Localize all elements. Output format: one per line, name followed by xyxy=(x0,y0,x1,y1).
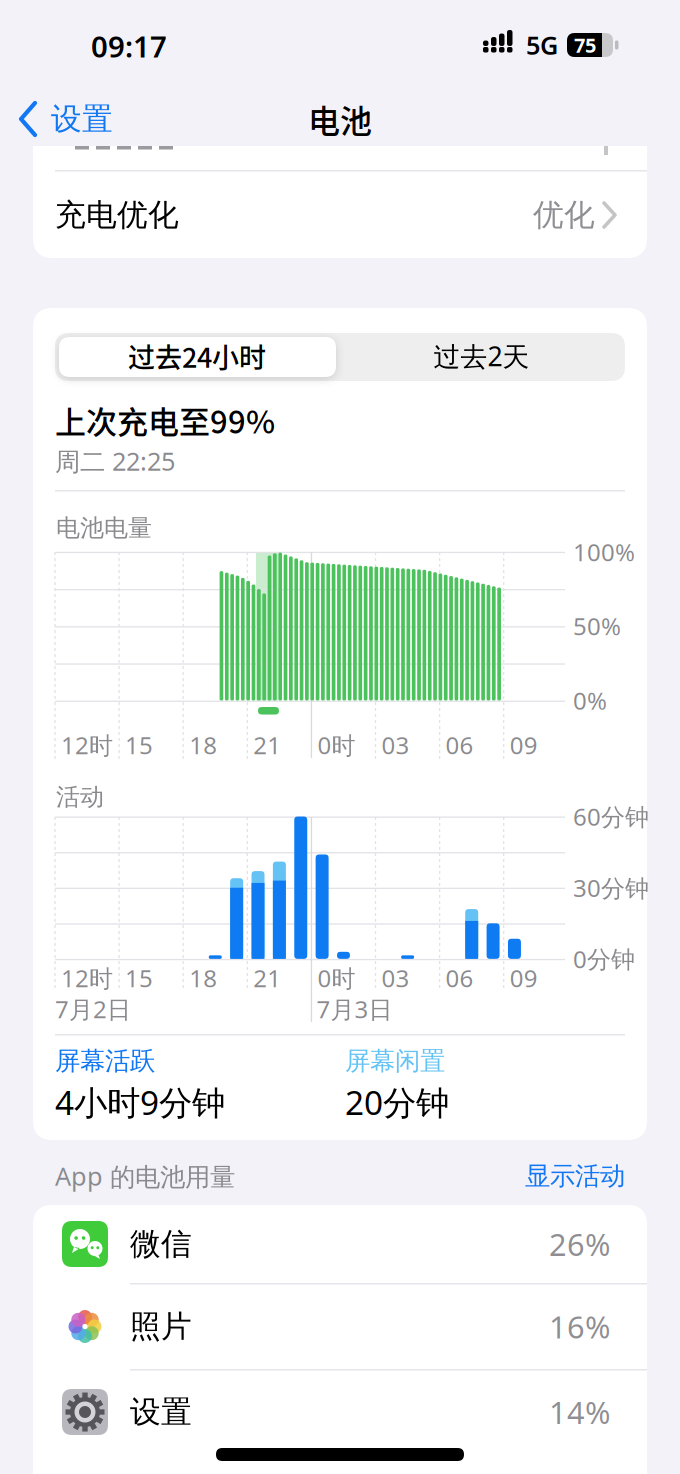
staticText: 03 xyxy=(381,962,409,994)
button[interactable]: 返回设置 xyxy=(0,89,150,149)
staticText: 充电优化 xyxy=(55,196,179,234)
staticText: 06 xyxy=(446,962,474,994)
staticText: 屏幕活跃 xyxy=(55,1045,155,1076)
staticText: 03 xyxy=(381,729,409,761)
button[interactable]: 充电优化 xyxy=(33,171,647,257)
staticText: 09 xyxy=(510,962,538,994)
staticText: 18 xyxy=(189,729,217,761)
staticText: App 的电池用量 xyxy=(55,1159,235,1193)
staticText: 18 xyxy=(189,962,217,994)
button[interactable]: 显示活动 xyxy=(205,1154,625,1198)
staticText: 周二 22:25 xyxy=(55,444,175,478)
staticText: 12时 xyxy=(61,962,113,994)
staticText: 15 xyxy=(125,729,153,761)
staticText: 微信 xyxy=(130,1225,192,1263)
staticText: 15 xyxy=(125,962,153,994)
staticText: 12时 xyxy=(61,729,113,761)
staticText: 7月3日 xyxy=(316,993,392,1025)
staticText: 电池电量 xyxy=(56,513,152,543)
staticText: 75 xyxy=(574,32,596,58)
staticText: 上次充电至99% xyxy=(55,398,275,442)
staticText: 21 xyxy=(253,729,281,761)
staticText: 50% xyxy=(573,610,621,642)
staticText: 过去24小时 xyxy=(128,336,266,376)
staticText: 0分钟 xyxy=(573,943,635,975)
staticText: 设置 xyxy=(51,100,113,138)
staticText: 30分钟 xyxy=(573,872,649,904)
staticText: 0时 xyxy=(317,962,355,994)
staticText: 26% xyxy=(549,1224,610,1264)
staticText: 0% xyxy=(573,685,607,716)
staticText: 照片 xyxy=(130,1308,192,1345)
button[interactable]: 过去2天 xyxy=(340,337,621,377)
staticText: 06 xyxy=(446,729,474,761)
staticText: 14% xyxy=(549,1392,610,1432)
staticText: 7月2日 xyxy=(55,993,131,1025)
staticText: 09:17 xyxy=(91,26,167,65)
staticText: 0时 xyxy=(317,729,355,761)
button[interactable]: 照片 xyxy=(33,1283,647,1369)
button[interactable]: 设置 xyxy=(33,1369,647,1455)
staticText: 优化 xyxy=(533,196,595,234)
staticText: 过去2天 xyxy=(433,338,529,374)
staticText: 16% xyxy=(549,1306,610,1347)
button[interactable]: 过去24小时 xyxy=(59,337,336,377)
staticText: 4小时9分钟 xyxy=(55,1080,225,1124)
staticText: 60分钟 xyxy=(573,801,649,832)
staticText: 显示活动 xyxy=(525,1160,625,1191)
staticText: 09 xyxy=(510,729,538,761)
staticText: 5G xyxy=(526,28,558,62)
staticText: 20分钟 xyxy=(345,1080,449,1124)
staticText: 100% xyxy=(573,536,635,568)
staticText: 21 xyxy=(253,962,281,994)
button[interactable]: 微信 xyxy=(33,1201,647,1287)
staticText: 活动 xyxy=(56,782,104,812)
staticText: 电池 xyxy=(308,96,372,142)
staticText: 设置 xyxy=(130,1393,192,1431)
staticText: 屏幕闲置 xyxy=(345,1045,445,1076)
